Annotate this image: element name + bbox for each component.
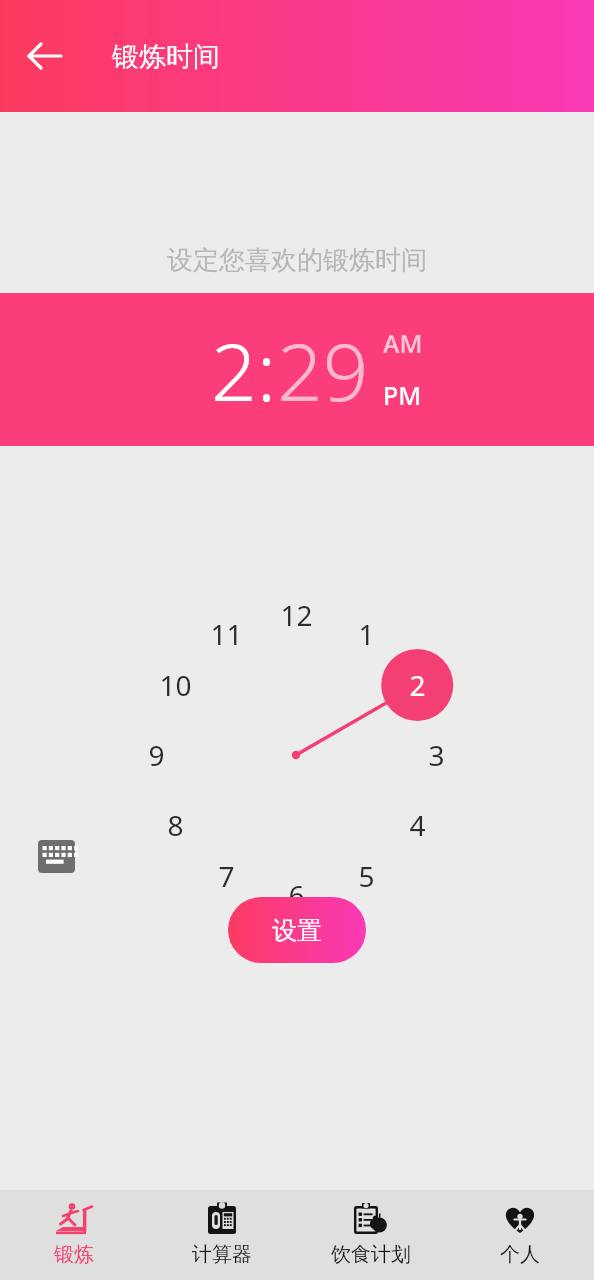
staticText: 4 <box>409 806 426 844</box>
staticText: 6 <box>288 876 305 914</box>
button[interactable]: 锻炼 <box>0 1190 148 1267</box>
staticText: 12 <box>280 596 313 634</box>
button[interactable]: 10 <box>151 663 199 707</box>
staticText: 饮食计划 <box>331 1242 411 1267</box>
button[interactable]: 4 <box>393 803 441 847</box>
staticText: 计算器 <box>192 1242 252 1267</box>
staticText: 设定您喜欢的锻炼时间 <box>0 244 594 277</box>
button[interactable]: 7 <box>202 854 250 898</box>
staticText: 8 <box>167 806 184 844</box>
button[interactable]: AM <box>383 326 423 360</box>
staticText: 11 <box>210 615 243 653</box>
staticText: 锻炼时间 <box>112 40 220 74</box>
button[interactable]: 个人 <box>445 1190 594 1267</box>
button[interactable]: 2 <box>393 663 441 707</box>
button[interactable]: Back <box>22 33 68 79</box>
button[interactable]: PM <box>383 378 422 412</box>
button[interactable]: 12 <box>272 593 320 637</box>
staticText: 3 <box>428 736 445 774</box>
button[interactable]: 计算器 <box>148 1190 296 1267</box>
button[interactable]: 6 <box>272 873 320 917</box>
button[interactable]: 3 <box>412 733 460 777</box>
button[interactable]: 29 <box>277 315 369 424</box>
button[interactable]: 5 <box>342 854 390 898</box>
button[interactable]: 8 <box>151 803 199 847</box>
staticText: 9 <box>148 736 165 774</box>
button[interactable]: 1 <box>342 612 390 656</box>
button[interactable]: 11 <box>202 612 250 656</box>
button[interactable]: 2: <box>211 315 277 424</box>
staticText: 锻炼 <box>54 1242 94 1267</box>
staticText: 5 <box>358 857 375 895</box>
button[interactable]: 设置 <box>228 897 366 963</box>
staticText: 设置 <box>272 915 322 946</box>
staticText: 1 <box>358 615 375 653</box>
button[interactable]: 9 <box>132 733 180 777</box>
button[interactable]: 饮食计划 <box>296 1190 445 1267</box>
button[interactable]: Keyboard input <box>38 840 75 873</box>
staticText: 个人 <box>500 1242 540 1267</box>
staticText: 7 <box>218 857 235 895</box>
staticText: 2 <box>409 666 426 704</box>
staticText: 10 <box>159 666 192 704</box>
